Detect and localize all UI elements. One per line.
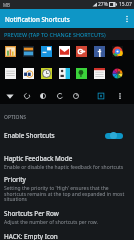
button[interactable]: Priority <box>0 175 134 203</box>
button[interactable]: App 13 <box>94 68 105 79</box>
button[interactable]: Bluetooth <box>72 92 80 100</box>
staticText: 27% <box>98 1 108 8</box>
staticText: Shortcuts Per Row <box>4 209 59 218</box>
button[interactable]: App 7 <box>112 46 123 57</box>
staticText: Enable or disable the haptic feedback fo… <box>4 164 124 171</box>
staticText: 15.07 <box>119 1 132 8</box>
button[interactable]: Wifi <box>6 92 14 100</box>
button[interactable]: App 1 <box>0 40 134 104</box>
button[interactable]: App 8 <box>5 68 16 79</box>
button[interactable]: App 6 <box>94 46 105 57</box>
button[interactable]: Shortcuts Per Row <box>0 209 134 226</box>
staticText: Adjust the number of shortcuts per row. <box>4 219 98 226</box>
staticText: Notification Shortcuts <box>5 15 70 23</box>
staticText: Haptic Feedback Mode <box>4 154 73 163</box>
button[interactable]: App 4 <box>59 46 70 57</box>
button[interactable]: App 3 <box>41 46 52 57</box>
button[interactable]: Screenshot <box>97 92 105 100</box>
button[interactable]: Sync <box>56 92 64 100</box>
button[interactable]: Haptic Feedback Mode <box>0 154 134 171</box>
button[interactable]: PREVIEW (TAP TO CHANGE SHORTCUTS) <box>4 31 106 38</box>
staticText: Enable Shortcuts <box>4 131 105 140</box>
button[interactable]: More options <box>118 92 122 100</box>
button[interactable]: App 11 <box>59 68 70 79</box>
button[interactable]: App 1 <box>5 46 16 57</box>
staticText: Setting the priority to 'High' ensures t… <box>4 185 130 203</box>
button[interactable]: Rotation <box>23 92 31 100</box>
button[interactable]: HACK: Empty Icon <box>4 232 58 240</box>
staticText: MB <box>3 2 11 8</box>
staticText: Priority <box>4 175 26 184</box>
button[interactable]: OPTIONS <box>4 114 27 121</box>
button[interactable]: App 10 <box>41 68 52 79</box>
button[interactable]: App 14 <box>112 68 123 79</box>
button[interactable]: Brightness <box>39 92 47 100</box>
button[interactable]: App 9 <box>23 68 34 79</box>
button[interactable]: App 12 <box>76 68 87 79</box>
button[interactable]: App 2 <box>23 46 34 57</box>
button[interactable]: App 5 <box>76 46 87 57</box>
button[interactable]: More options <box>120 9 134 28</box>
button[interactable]: Enable Shortcuts <box>0 129 134 142</box>
